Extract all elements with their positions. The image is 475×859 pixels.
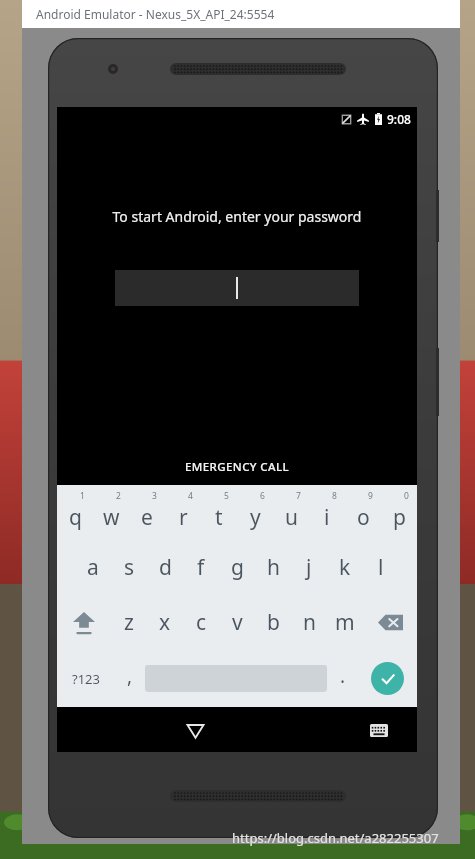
staticText: w: [103, 503, 120, 532]
staticText: EMERGENCY CALL: [185, 459, 290, 475]
staticText: z: [124, 608, 134, 637]
staticText: https://blog.csdn.net/a282255307: [232, 829, 439, 847]
button[interactable]: g: [219, 540, 255, 595]
staticText: 7: [296, 490, 301, 502]
staticText: 0: [404, 490, 409, 502]
button[interactable]: ?123: [57, 650, 114, 707]
button[interactable]: a: [75, 540, 111, 595]
button[interactable]: 7: [273, 485, 309, 540]
staticText: s: [124, 553, 135, 582]
staticText: 9: [368, 490, 373, 502]
staticText: 9:08: [387, 111, 411, 127]
staticText: To start Android, enter your password: [57, 207, 417, 226]
staticText: v: [232, 608, 243, 637]
button[interactable]: Backspace: [363, 595, 417, 650]
staticText: a: [87, 553, 99, 582]
button[interactable]: 9: [345, 485, 381, 540]
button[interactable]: ,: [114, 650, 145, 707]
staticText: q: [69, 503, 82, 532]
staticText: i: [324, 503, 330, 532]
staticText: .: [340, 663, 346, 689]
staticText: g: [231, 553, 244, 582]
button[interactable]: s: [111, 540, 147, 595]
button[interactable]: n: [291, 595, 327, 650]
staticText: p: [393, 503, 406, 532]
button[interactable]: f: [183, 540, 219, 595]
staticText: 3: [152, 490, 157, 502]
button[interactable]: m: [327, 595, 363, 650]
staticText: b: [267, 608, 280, 637]
staticText: r: [179, 503, 188, 532]
button[interactable]: Back, hide keyboard: [175, 710, 215, 750]
button[interactable]: Change keyboard: [359, 710, 399, 750]
staticText: c: [196, 608, 207, 637]
button[interactable]: 8: [309, 485, 345, 540]
button[interactable]: z: [111, 595, 147, 650]
button[interactable]: v: [219, 595, 255, 650]
staticText: ,: [127, 663, 133, 689]
button[interactable]: Enter: [371, 662, 404, 695]
staticText: m: [335, 608, 355, 637]
button[interactable]: .: [327, 650, 358, 707]
button[interactable]: Shift: [57, 595, 111, 650]
staticText: 8: [332, 490, 337, 502]
staticText: ?123: [72, 670, 100, 688]
button[interactable]: c: [183, 595, 219, 650]
staticText: x: [159, 608, 171, 637]
button[interactable]: 2: [93, 485, 129, 540]
staticText: Android Emulator - Nexus_5X_API_24:5554: [36, 6, 275, 22]
staticText: u: [285, 503, 298, 532]
button[interactable]: 4: [165, 485, 201, 540]
staticText: j: [306, 553, 312, 582]
button[interactable]: 3: [129, 485, 165, 540]
button[interactable]: h: [255, 540, 291, 595]
staticText: h: [267, 553, 280, 582]
button[interactable]: EMERGENCY CALL: [185, 459, 290, 475]
staticText: o: [357, 503, 370, 532]
button[interactable]: 0: [381, 485, 417, 540]
button[interactable]: [115, 270, 359, 306]
button[interactable]: x: [147, 595, 183, 650]
staticText: e: [141, 503, 153, 532]
staticText: 4: [188, 490, 193, 502]
staticText: f: [197, 553, 205, 582]
button[interactable]: d: [147, 540, 183, 595]
button[interactable]: j: [291, 540, 327, 595]
staticText: k: [339, 553, 351, 582]
staticText: t: [215, 503, 223, 532]
staticText: 2: [116, 490, 121, 502]
staticText: 5: [224, 490, 229, 502]
button[interactable]: 5: [201, 485, 237, 540]
staticText: n: [303, 608, 316, 637]
staticText: 6: [260, 490, 265, 502]
button[interactable]: k: [327, 540, 363, 595]
button[interactable]: b: [255, 595, 291, 650]
staticText: l: [378, 553, 384, 582]
button[interactable]: 1: [57, 485, 93, 540]
button[interactable]: 6: [237, 485, 273, 540]
button[interactable]: l: [363, 540, 399, 595]
staticText: d: [159, 553, 172, 582]
staticText: y: [250, 503, 261, 532]
staticText: 1: [80, 490, 85, 502]
